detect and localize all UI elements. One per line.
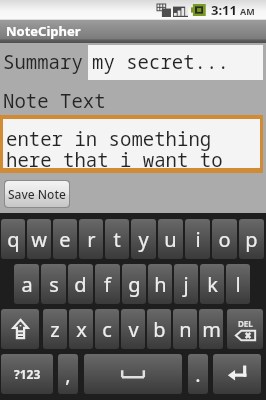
- button[interactable]: y: [131, 219, 156, 259]
- staticText: k: [207, 271, 218, 298]
- staticText: my secret...: [92, 49, 229, 75]
- staticText: w: [31, 226, 47, 253]
- staticText: q: [7, 226, 20, 253]
- button[interactable]: e: [53, 219, 77, 259]
- button[interactable]: p: [239, 219, 264, 259]
- button[interactable]: Delete: [227, 309, 263, 349]
- staticText: u: [164, 226, 177, 253]
- button[interactable]: d: [68, 264, 93, 304]
- button[interactable]: k: [200, 264, 224, 304]
- staticText: NoteCipher: [6, 22, 81, 40]
- button[interactable]: my secret...: [88, 45, 263, 80]
- staticText: m: [202, 316, 221, 343]
- staticText: y: [138, 226, 149, 253]
- button[interactable]: Save Note: [5, 181, 69, 207]
- button[interactable]: b: [147, 309, 171, 349]
- button[interactable]: x: [69, 309, 93, 349]
- button[interactable]: r: [79, 219, 103, 259]
- button[interactable]: g: [122, 264, 146, 304]
- staticText: c: [102, 316, 112, 343]
- button[interactable]: ?123: [1, 354, 53, 394]
- button[interactable]: enter in something here that i want to: [3, 119, 260, 168]
- staticText: l: [235, 271, 241, 298]
- staticText: i: [195, 226, 201, 253]
- staticText: Summary: [3, 49, 83, 75]
- staticText: d: [74, 271, 87, 298]
- staticText: s: [49, 271, 59, 298]
- button[interactable]: ,: [58, 354, 78, 394]
- staticText: r: [87, 226, 96, 253]
- staticText: o: [218, 226, 231, 253]
- button[interactable]: Enter: [213, 354, 261, 394]
- staticText: j: [183, 271, 189, 298]
- staticText: p: [245, 226, 258, 253]
- staticText: g: [128, 271, 141, 298]
- button[interactable]: o: [212, 219, 237, 259]
- button[interactable]: q: [1, 219, 25, 259]
- staticText: n: [179, 316, 192, 343]
- staticText: Save Note: [8, 186, 66, 202]
- staticText: v: [128, 316, 139, 343]
- staticText: h: [154, 271, 167, 298]
- button[interactable]: s: [41, 264, 66, 304]
- staticText: z: [50, 316, 60, 343]
- button[interactable]: l: [226, 264, 250, 304]
- button[interactable]: i: [185, 219, 210, 259]
- staticText: e: [59, 226, 71, 253]
- button[interactable]: a: [14, 264, 39, 304]
- button[interactable]: w: [27, 219, 51, 259]
- button[interactable]: j: [174, 264, 198, 304]
- staticText: t: [113, 226, 121, 253]
- button[interactable]: c: [95, 309, 119, 349]
- button[interactable]: .: [188, 354, 208, 394]
- staticText: ?123: [14, 366, 41, 382]
- staticText: ,: [65, 361, 71, 388]
- button[interactable]: t: [105, 219, 129, 259]
- button[interactable]: z: [43, 309, 67, 349]
- button[interactable]: m: [199, 309, 223, 349]
- staticText: Note Text: [3, 88, 106, 114]
- staticText: x: [76, 316, 87, 343]
- button[interactable]: h: [148, 264, 172, 304]
- staticText: .: [195, 361, 201, 388]
- button[interactable]: Space: [84, 354, 182, 394]
- staticText: b: [153, 316, 166, 343]
- staticText: DEL: [238, 318, 253, 329]
- staticText: enter in something here that i want to: [6, 126, 223, 172]
- button[interactable]: v: [121, 309, 145, 349]
- staticText: AM: [240, 5, 255, 17]
- button[interactable]: u: [158, 219, 183, 259]
- button[interactable]: Shift: [1, 309, 39, 349]
- staticText: 3:11: [211, 1, 237, 19]
- staticText: f: [104, 271, 111, 298]
- staticText: a: [21, 271, 33, 298]
- button[interactable]: f: [95, 264, 120, 304]
- button[interactable]: n: [173, 309, 197, 349]
